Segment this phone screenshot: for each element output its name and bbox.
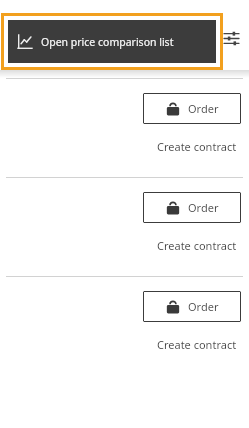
staticText: Open price comparison list <box>41 35 174 49</box>
button[interactable]: Order <box>143 291 241 322</box>
button[interactable]: Create contract <box>153 137 241 156</box>
button[interactable]: Create contract <box>153 236 241 255</box>
button[interactable]: Open price comparison list <box>8 20 216 63</box>
staticText: Order <box>188 101 219 116</box>
staticText: Create contract <box>157 337 237 352</box>
staticText: Order <box>188 200 219 215</box>
button[interactable]: Order <box>143 93 241 124</box>
staticText: Create contract <box>157 139 237 154</box>
staticText: Order <box>188 299 219 314</box>
staticText: Create contract <box>157 238 237 253</box>
button[interactable]: Order <box>143 192 241 223</box>
button[interactable]: Create contract <box>153 335 241 354</box>
button[interactable]: Filter settings <box>219 26 243 50</box>
